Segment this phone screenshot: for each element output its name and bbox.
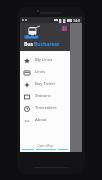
staticText: About	[35, 117, 47, 123]
staticText: Bucharest	[34, 41, 60, 48]
staticText: 14:0	[73, 18, 80, 23]
staticText: Stations	[35, 93, 51, 99]
button[interactable]: My Lines	[20, 54, 70, 66]
staticText: My Lines	[35, 57, 53, 63]
staticText: Open Map	[37, 144, 53, 148]
button[interactable]: App logo	[20, 23, 70, 51]
button[interactable]: Timetables	[20, 102, 70, 114]
button[interactable]: Language	[60, 26, 67, 31]
staticText: Lines	[35, 69, 46, 75]
staticText: Buy Ticket	[35, 81, 56, 87]
button[interactable]: Stations	[20, 90, 70, 102]
button[interactable]: About	[20, 114, 70, 126]
staticText: Timetables	[35, 105, 57, 111]
button[interactable]: Buy Ticket	[20, 78, 70, 90]
button[interactable]: Lines	[20, 66, 70, 78]
other: App logo	[24, 26, 44, 41]
staticText: Bus	[24, 41, 34, 48]
